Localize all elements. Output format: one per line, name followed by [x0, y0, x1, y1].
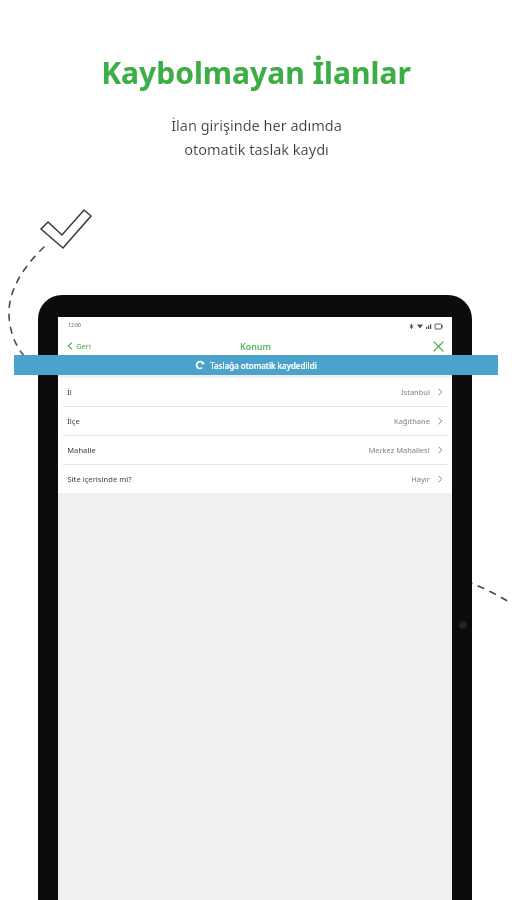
button[interactable]: Taslağa otomatik kaydedildi	[14, 355, 498, 375]
staticText: Mahalle	[67, 445, 96, 455]
button[interactable]: Site içerisinde mi?	[58, 465, 452, 493]
button[interactable]: İlçe	[58, 407, 452, 435]
staticText: Kağıthane	[394, 416, 430, 426]
staticText: Konum	[240, 340, 271, 352]
staticText: İl	[67, 387, 72, 397]
staticText: 12:00	[68, 322, 81, 329]
staticText: Kaybolmayan İlanlar	[101, 52, 411, 93]
staticText: İlan girişinde her adımda	[171, 115, 342, 135]
staticText: Merkez Mahallesi	[368, 445, 430, 455]
staticText: otomatik taslak kaydı	[184, 139, 329, 159]
staticText: İlçe	[67, 416, 80, 426]
staticText: Site içerisinde mi?	[67, 474, 132, 484]
button[interactable]: Mahalle	[58, 436, 452, 464]
button[interactable]: İl	[58, 378, 452, 406]
staticText: İstanbul	[401, 387, 430, 397]
staticText: Geri	[76, 341, 91, 351]
staticText: Hayır	[411, 474, 430, 484]
staticText: Taslağa otomatik kaydedildi	[210, 360, 317, 371]
button[interactable]: Kapat	[434, 334, 443, 358]
button[interactable]: Geri	[67, 334, 91, 358]
